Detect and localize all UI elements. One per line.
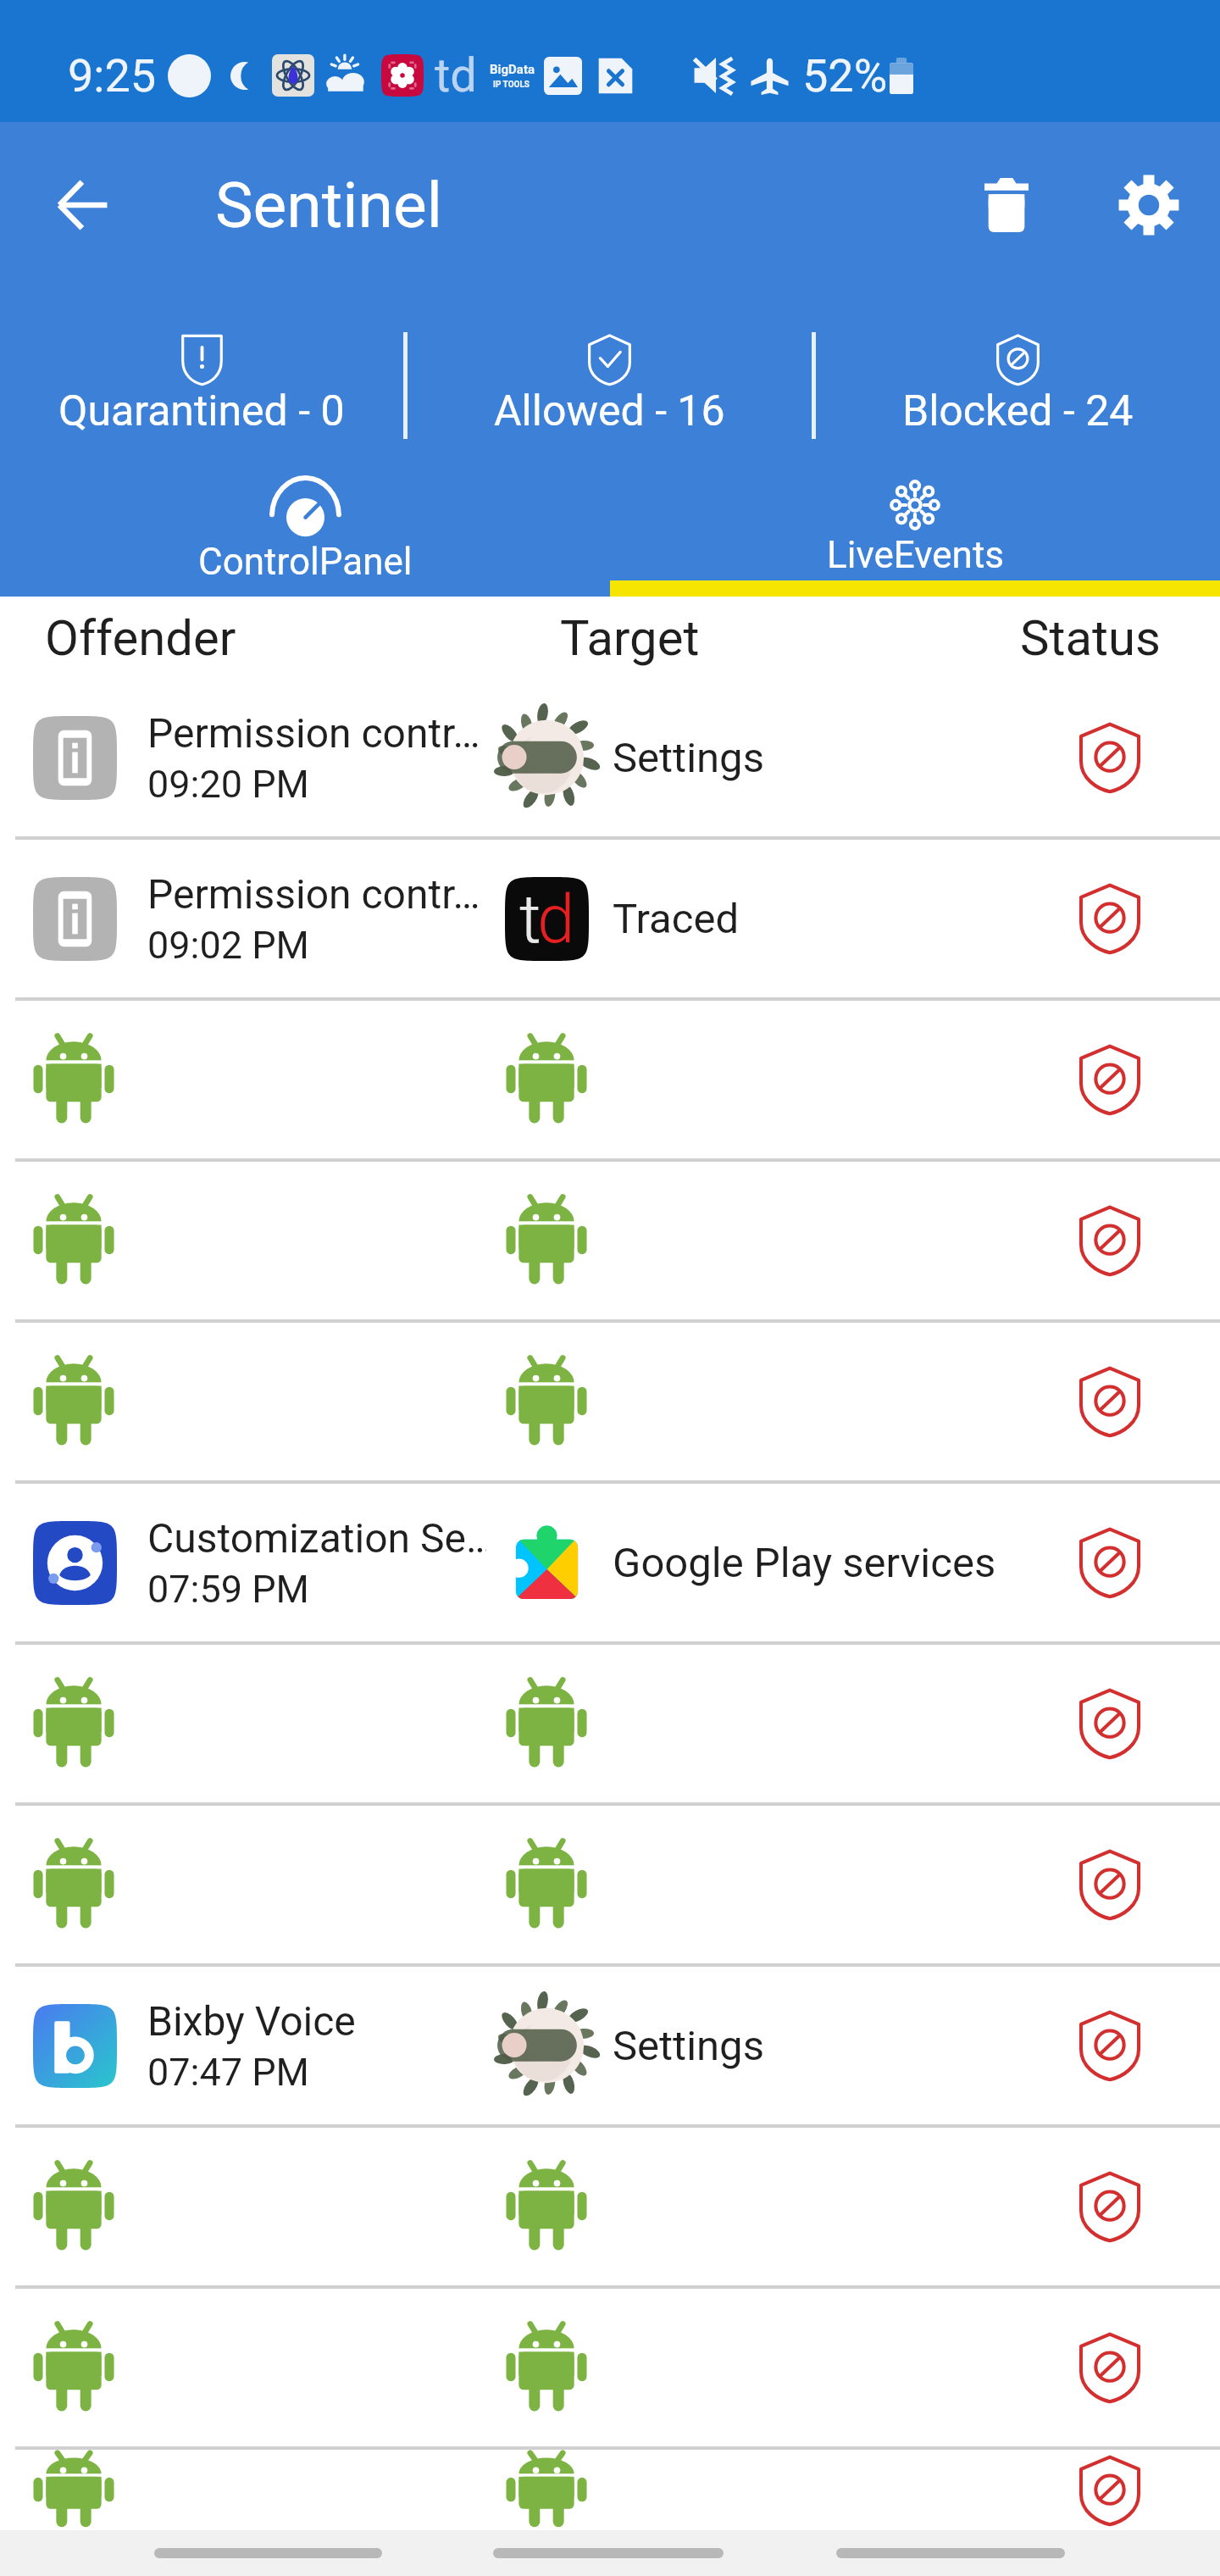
staticText: Permission contr… [147, 870, 480, 918]
button[interactable]: Back [836, 2548, 1065, 2558]
staticText: Customization Se… [147, 1514, 486, 1562]
staticText: t [519, 880, 541, 959]
button[interactable] [0, 1645, 1220, 1806]
staticText: 52% [802, 49, 888, 103]
button[interactable]: Customization Se… [0, 1484, 1220, 1645]
staticText: 07:47 PM [147, 2050, 309, 2095]
button[interactable]: Home [493, 2548, 724, 2558]
button[interactable] [0, 2128, 1220, 2289]
button[interactable] [0, 1806, 1220, 1967]
button[interactable]: Permission contr… [0, 840, 1220, 1001]
staticText: Permission contr… [147, 709, 480, 757]
staticText: Allowed - 16 [494, 386, 725, 436]
button[interactable]: Delete [959, 158, 1054, 253]
staticText: 09:02 PM [147, 923, 309, 968]
staticText: Settings [613, 2022, 764, 2070]
button[interactable]: Allowed - 16 [408, 287, 812, 463]
staticText: LiveEvents [827, 533, 1004, 577]
staticText: BigData [490, 62, 535, 77]
staticText: 09:20 PM [147, 762, 309, 807]
button[interactable]: Quarantined - 0 [0, 287, 403, 463]
button[interactable] [0, 2289, 1220, 2450]
button[interactable]: Settings [1101, 158, 1196, 253]
button[interactable]: Bixby Voice [0, 1967, 1220, 2128]
button[interactable] [0, 1162, 1220, 1323]
staticText: Google Play services [613, 1539, 996, 1587]
staticText: Bixby Voice [147, 1997, 356, 2045]
button[interactable]: Recents [154, 2548, 382, 2558]
button[interactable]: Blocked - 24 [816, 287, 1220, 463]
staticText: 9:25 [68, 49, 157, 103]
button[interactable]: ControlPanel [0, 463, 610, 597]
staticText: Offender [45, 609, 236, 667]
button[interactable] [0, 1001, 1220, 1162]
button[interactable] [0, 2450, 1220, 2530]
staticText: Blocked - 24 [902, 386, 1134, 436]
staticText: Status [1020, 609, 1161, 667]
button[interactable]: Back [36, 158, 130, 253]
staticText: Sentinel [215, 168, 442, 242]
staticText: Settings [613, 734, 764, 782]
staticText: IP TOOLS [493, 80, 530, 90]
staticText: ControlPanel [198, 540, 413, 584]
button[interactable]: Permission contr… [0, 679, 1220, 840]
staticText: d [537, 880, 575, 959]
staticText: Quarantined - 0 [58, 386, 345, 436]
button[interactable] [0, 1323, 1220, 1484]
button[interactable]: LiveEvents [610, 463, 1220, 597]
staticText: 07:59 PM [147, 1567, 309, 1612]
staticText: Target [560, 609, 700, 667]
staticText: Traced [613, 895, 740, 943]
staticText: td [435, 47, 477, 103]
